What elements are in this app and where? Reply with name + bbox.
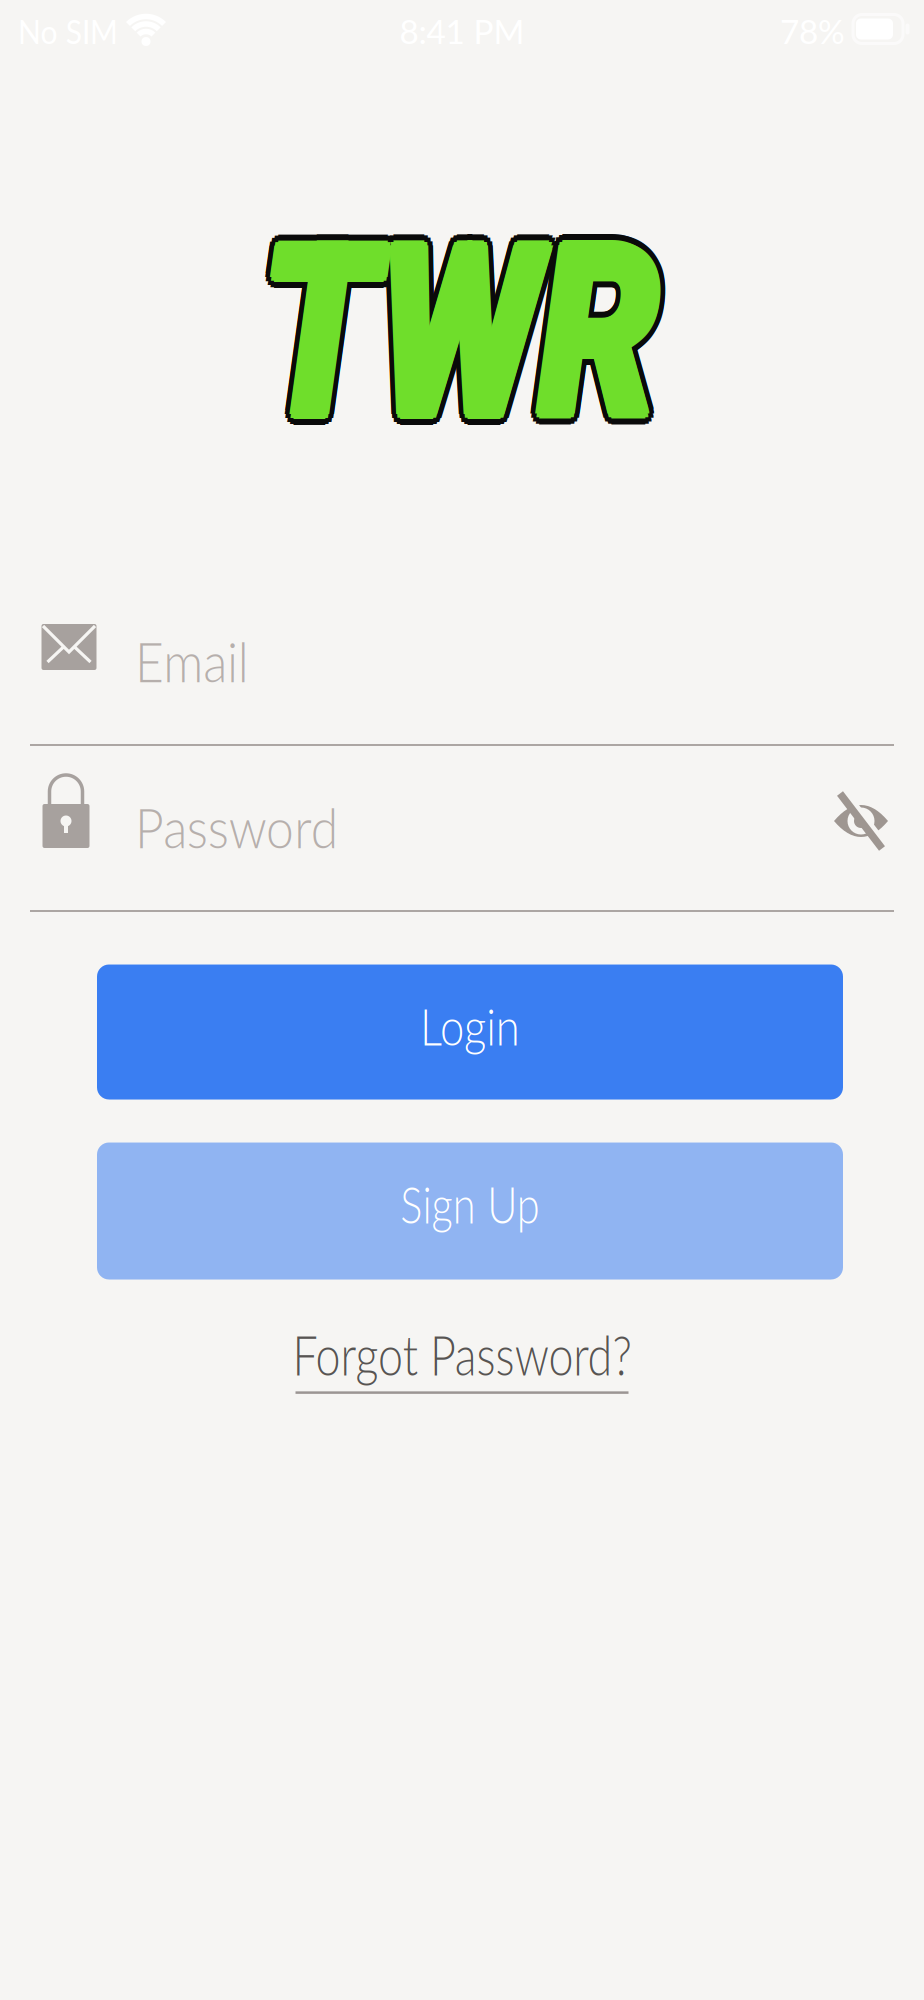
button[interactable]: Email — [15, 616, 909, 732]
staticText: TWR — [210, 201, 707, 479]
staticText: TWR — [205, 193, 702, 471]
button[interactable]: Show password — [829, 789, 893, 853]
staticText: TWR — [216, 194, 713, 472]
staticText: Login — [412, 996, 528, 1056]
staticText: TWR — [213, 187, 710, 465]
staticText: 8:41 PM — [399, 11, 524, 51]
staticText: TWR — [222, 198, 719, 476]
button[interactable]: Password — [15, 782, 909, 898]
staticText: TWR — [206, 198, 703, 476]
staticText: TWR — [216, 204, 713, 482]
staticText: TWR — [206, 194, 703, 472]
staticText: Sign Up — [385, 1174, 555, 1234]
staticText: TWR — [208, 197, 705, 476]
staticText: TWR — [218, 195, 715, 473]
staticText: TWR — [207, 204, 704, 482]
staticText: No SIM — [18, 11, 129, 51]
staticText: TWR — [211, 194, 708, 472]
staticText: TWR — [222, 190, 719, 468]
staticText: TWR — [201, 198, 698, 476]
staticText: 78% — [780, 11, 845, 51]
staticText: TWR — [216, 184, 713, 462]
staticText: TWR — [200, 194, 697, 472]
staticText: TWR — [204, 186, 701, 464]
staticText: TWR — [207, 184, 704, 462]
staticText: TWR — [204, 202, 701, 480]
staticText: TWR — [219, 202, 716, 480]
button[interactable]: Forgot Password? — [250, 1320, 674, 1394]
staticText: TWR — [211, 199, 708, 477]
staticText: TWR — [211, 189, 708, 467]
staticText: TWR — [208, 188, 705, 466]
staticText: TWR — [211, 205, 708, 483]
button[interactable]: Login — [97, 964, 843, 1099]
staticText: TWR — [201, 190, 698, 468]
staticText: TWR — [217, 190, 714, 468]
staticText: Password — [135, 794, 358, 860]
staticText: TWR — [219, 186, 716, 464]
staticText: TWR — [215, 200, 712, 478]
staticText: TWR — [215, 190, 712, 468]
staticText: Forgot Password? — [250, 1320, 674, 1387]
staticText: TWR — [211, 183, 708, 461]
staticText: TWR — [222, 194, 719, 472]
staticText: TWR — [215, 197, 712, 476]
staticText: Email — [135, 628, 260, 694]
button[interactable]: Sign Up — [97, 1142, 843, 1279]
staticText: TWR — [208, 190, 705, 468]
